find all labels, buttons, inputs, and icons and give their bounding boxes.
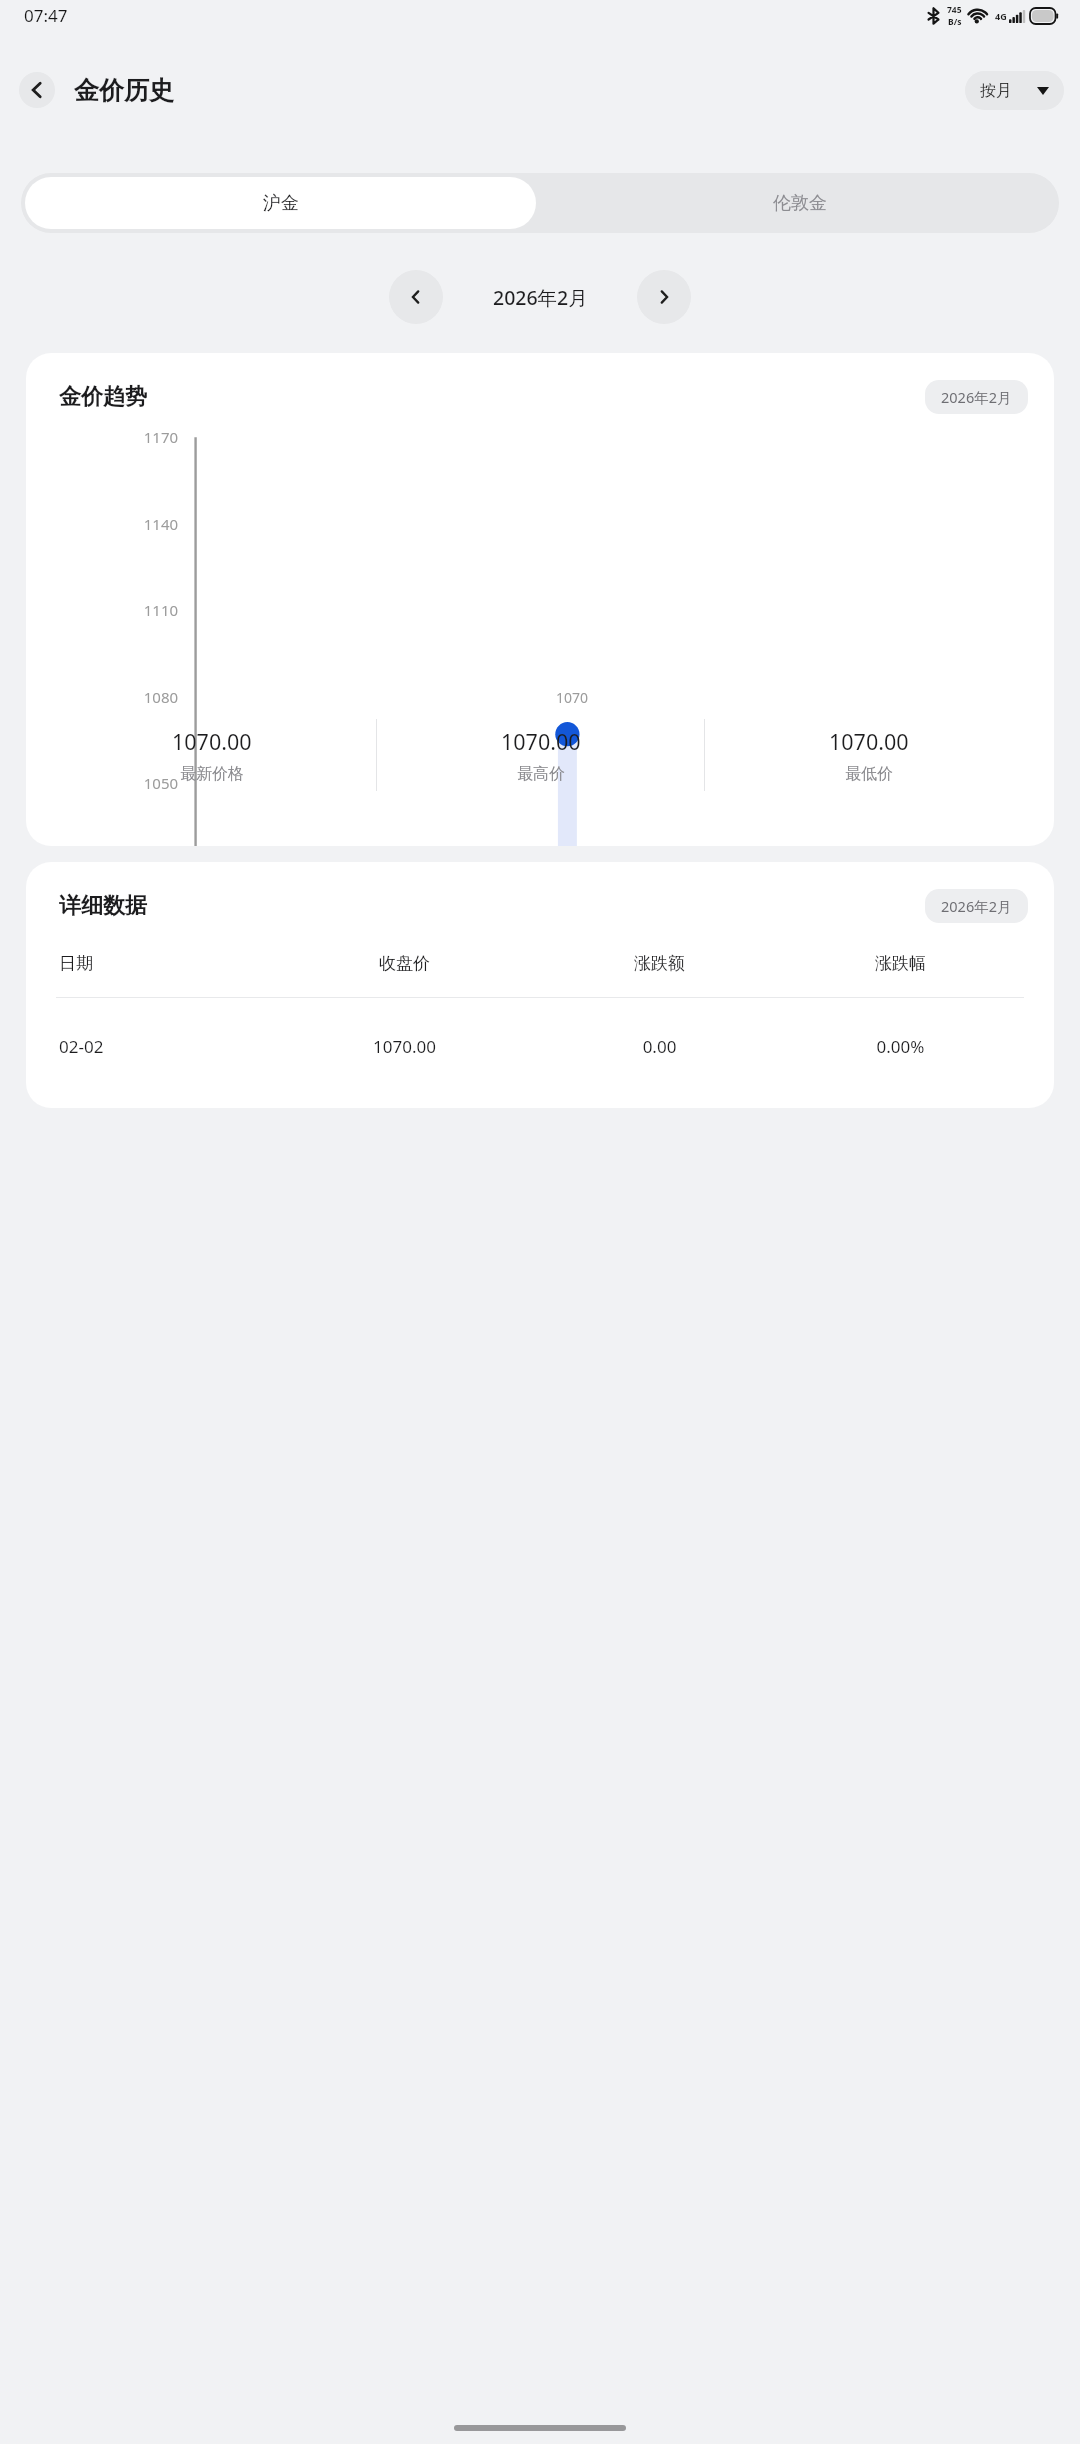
staticText: 0.00%: [780, 1035, 1021, 1058]
staticText: 1070.00: [501, 727, 581, 756]
staticText: 最高价: [517, 764, 565, 784]
button[interactable]: 按月: [965, 71, 1064, 110]
staticText: 4G: [995, 10, 1007, 22]
staticText: 02-02: [59, 1035, 270, 1058]
button[interactable]: Previous month: [389, 270, 443, 324]
staticText: 1070.00: [829, 727, 909, 756]
staticText: 伦敦金: [773, 192, 827, 215]
staticText: 745: [947, 4, 962, 16]
staticText: 最新价格: [180, 764, 244, 784]
staticText: 详细数据: [59, 892, 147, 920]
staticText: 涨跌幅: [780, 953, 1021, 974]
staticText: 日期: [59, 953, 270, 974]
staticText: 2026年2月: [941, 896, 1012, 916]
staticText: 金价历史: [74, 75, 174, 106]
button[interactable]: Next month: [637, 270, 691, 324]
staticText: 2026年2月: [493, 284, 588, 311]
button[interactable]: Back: [19, 72, 55, 108]
staticText: 涨跌额: [539, 953, 780, 974]
staticText: 金价趋势: [59, 383, 147, 411]
button[interactable]: 沪金: [25, 177, 536, 229]
staticText: 2026年2月: [941, 387, 1012, 407]
staticText: 1070.00: [270, 1035, 539, 1058]
staticText: 1070.00: [172, 727, 252, 756]
staticText: 沪金: [263, 192, 299, 215]
staticText: 收盘价: [270, 953, 539, 974]
staticText: 07:47: [24, 4, 68, 27]
staticText: B/s: [948, 16, 962, 28]
button[interactable]: 伦敦金: [540, 173, 1059, 233]
button[interactable]: 02-02: [26, 998, 1054, 1094]
staticText: 0.00: [539, 1035, 780, 1058]
staticText: 按月: [980, 81, 1012, 101]
staticText: 最低价: [845, 764, 893, 784]
